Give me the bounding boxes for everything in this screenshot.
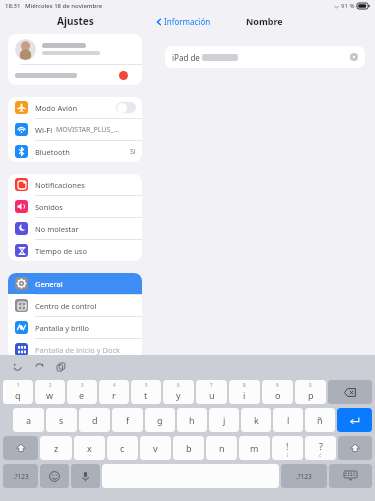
staticText: n xyxy=(219,442,225,454)
button[interactable]: Sonidos xyxy=(8,196,142,217)
button[interactable]: h xyxy=(177,408,207,432)
button[interactable]: 6 xyxy=(163,380,194,404)
staticText: 6 xyxy=(177,382,180,388)
button[interactable]: Pantalla y brillo xyxy=(8,317,142,338)
staticText: d xyxy=(92,414,98,426)
button[interactable]: Modo Avión xyxy=(8,97,142,118)
button[interactable]: 7 xyxy=(196,380,227,404)
staticText: z xyxy=(54,442,59,454)
staticText: .?123 xyxy=(13,472,29,481)
staticText: Pantalla y brillo xyxy=(35,323,90,333)
staticText: c xyxy=(120,442,125,454)
button[interactable]: Intro xyxy=(337,408,372,432)
staticText: e xyxy=(79,389,85,401)
staticText: j xyxy=(223,414,226,426)
staticText: b xyxy=(186,442,192,454)
staticText: ? xyxy=(319,440,323,452)
button[interactable]: x xyxy=(74,436,105,460)
staticText: 2 xyxy=(49,382,52,388)
button[interactable]: 3 xyxy=(67,380,97,404)
button[interactable]: General xyxy=(8,273,142,294)
button[interactable]: g xyxy=(145,408,175,432)
button[interactable]: Tiempo de uso xyxy=(8,240,142,261)
staticText: General xyxy=(35,279,63,289)
staticText: 18:31 Miércoles 18 de noviembre xyxy=(5,2,103,10)
button[interactable]: f xyxy=(112,408,143,432)
button[interactable]: Pantalla de inicio y Dock xyxy=(8,339,142,360)
staticText: f xyxy=(126,414,130,426)
staticText: Información xyxy=(164,16,211,27)
staticText: s xyxy=(59,414,64,426)
button[interactable] xyxy=(8,34,142,85)
button[interactable]: iPad de xyxy=(165,46,365,68)
staticText: y xyxy=(176,389,181,401)
button[interactable]: l xyxy=(273,408,303,432)
button[interactable]: .?123 xyxy=(281,464,327,488)
button[interactable]: v xyxy=(140,436,171,460)
button[interactable]: s xyxy=(46,408,77,432)
staticText: 1 xyxy=(17,382,20,388)
button[interactable]: 1 xyxy=(3,380,33,404)
staticText: g xyxy=(157,414,163,426)
button[interactable]: Información xyxy=(152,16,211,27)
button[interactable]: No molestar xyxy=(8,218,142,239)
staticText: i xyxy=(243,389,246,401)
button[interactable]: 0 xyxy=(295,380,326,404)
staticText: k xyxy=(254,414,259,426)
staticText: m xyxy=(250,442,259,454)
button[interactable]: 5 xyxy=(131,380,161,404)
button[interactable]: Mayúsculas xyxy=(3,436,38,460)
button[interactable]: Modo Avión xyxy=(116,102,136,113)
button[interactable]: Pegar xyxy=(55,361,67,373)
button[interactable]: n xyxy=(206,436,237,460)
button[interactable]: ñ xyxy=(305,408,335,432)
staticText: t xyxy=(144,389,148,401)
staticText: 4 xyxy=(113,382,116,388)
button[interactable]: ¿ xyxy=(305,436,336,460)
staticText: 9 xyxy=(276,382,279,388)
button[interactable]: b xyxy=(173,436,204,460)
staticText: MOVISTAR_PLUS_… xyxy=(56,125,119,135)
button[interactable]: Mayúsculas xyxy=(338,436,372,460)
button[interactable]: Ocultar teclado xyxy=(329,464,372,488)
staticText: Notificaciones xyxy=(35,180,85,190)
button[interactable]: c xyxy=(107,436,138,460)
button[interactable]: 4 xyxy=(99,380,129,404)
button[interactable]: k xyxy=(241,408,271,432)
staticText: Sonidos xyxy=(35,202,63,212)
button[interactable]: Dictado xyxy=(71,464,100,488)
staticText: Pantalla de inicio y Dock xyxy=(35,345,121,355)
button[interactable]: Notificaciones xyxy=(8,174,142,195)
button[interactable]: Wi-Fi xyxy=(8,119,142,140)
staticText: ! xyxy=(286,440,289,452)
staticText: a xyxy=(26,414,32,426)
button[interactable]: Centro de control xyxy=(8,295,142,316)
button[interactable]: a xyxy=(13,408,44,432)
button[interactable]: m xyxy=(239,436,270,460)
staticText: w xyxy=(46,389,54,401)
staticText: Nombre xyxy=(246,15,283,27)
button[interactable]: j xyxy=(209,408,239,432)
staticText: iPad de xyxy=(172,52,200,63)
button[interactable]: 2 xyxy=(35,380,65,404)
button[interactable]: Emoji xyxy=(40,464,69,488)
button[interactable]: Borrar texto xyxy=(350,53,358,61)
button[interactable]: Rehacer xyxy=(33,360,46,373)
button[interactable]: 8 xyxy=(229,380,260,404)
staticText: x xyxy=(87,442,92,454)
staticText: .?123 xyxy=(296,472,312,481)
staticText: p xyxy=(308,389,314,401)
button[interactable]: Bluetooth xyxy=(8,141,142,162)
button[interactable]: 9 xyxy=(262,380,293,404)
button[interactable]: ¡ xyxy=(272,436,303,460)
staticText: Modo Avión xyxy=(35,103,78,113)
button[interactable]: Retroceso xyxy=(328,380,372,404)
staticText: r xyxy=(112,389,116,401)
button[interactable]: d xyxy=(79,408,110,432)
button[interactable]: Deshacer xyxy=(11,360,24,373)
button[interactable]: .?123 xyxy=(3,464,38,488)
staticText: 3 xyxy=(81,382,84,388)
button[interactable]: z xyxy=(40,436,72,460)
staticText: l xyxy=(287,414,290,426)
